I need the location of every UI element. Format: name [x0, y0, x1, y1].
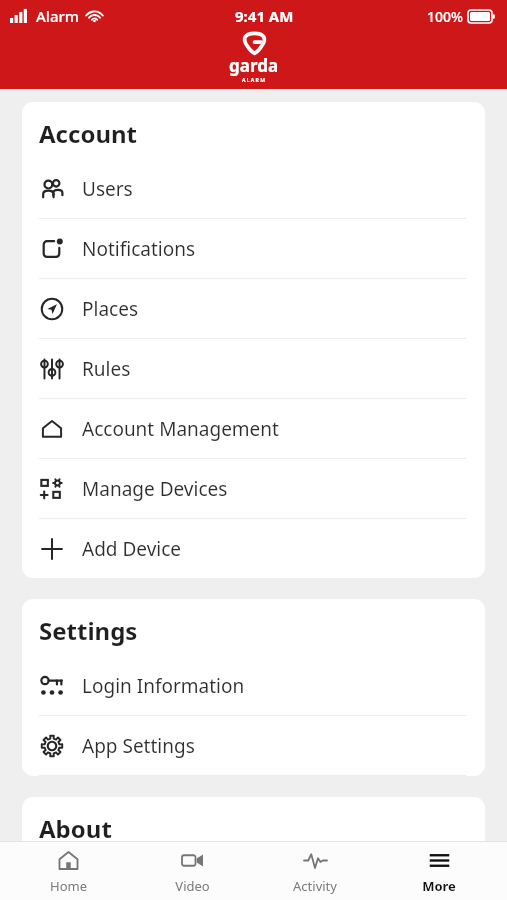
button[interactable]: Video	[136, 845, 248, 898]
staticText: About	[39, 812, 112, 845]
button[interactable]: Privacy Policy	[22, 854, 485, 900]
staticText: Privacy Policy	[82, 864, 202, 890]
staticText: Settings	[39, 614, 138, 647]
staticText: Add Device	[82, 536, 182, 562]
staticText: Users	[82, 176, 133, 202]
staticText: Login Information	[82, 673, 245, 699]
staticText: Home	[50, 877, 87, 895]
button[interactable]: Login Information	[22, 656, 485, 715]
staticText: Notifications	[82, 236, 196, 262]
button[interactable]: Users	[22, 159, 485, 218]
staticText: More	[422, 877, 456, 895]
staticText: ALARM	[242, 77, 267, 84]
staticText: Account	[39, 117, 137, 150]
staticText: Places	[82, 296, 138, 322]
staticText: 100%	[427, 7, 463, 26]
button[interactable]: Home	[12, 845, 124, 898]
button[interactable]: Places	[22, 279, 485, 338]
button[interactable]: Notifications	[22, 219, 485, 278]
staticText: Manage Devices	[82, 476, 228, 502]
button[interactable]: Manage Devices	[22, 459, 485, 518]
button[interactable]: App Settings	[22, 716, 485, 775]
button[interactable]: Add Device	[22, 519, 485, 578]
staticText: 9:41 AM	[235, 6, 294, 26]
staticText: Account Management	[82, 416, 279, 442]
button[interactable]: More	[383, 845, 495, 898]
staticText: Activity	[293, 877, 337, 895]
staticText: App Settings	[82, 733, 195, 759]
staticText: Alarm	[36, 6, 80, 26]
button[interactable]: Rules	[22, 339, 485, 398]
button[interactable]: Activity	[259, 845, 371, 898]
button[interactable]: Account Management	[22, 399, 485, 458]
staticText: Video	[175, 877, 210, 895]
staticText: garda	[229, 54, 279, 77]
staticText: Rules	[82, 356, 131, 382]
